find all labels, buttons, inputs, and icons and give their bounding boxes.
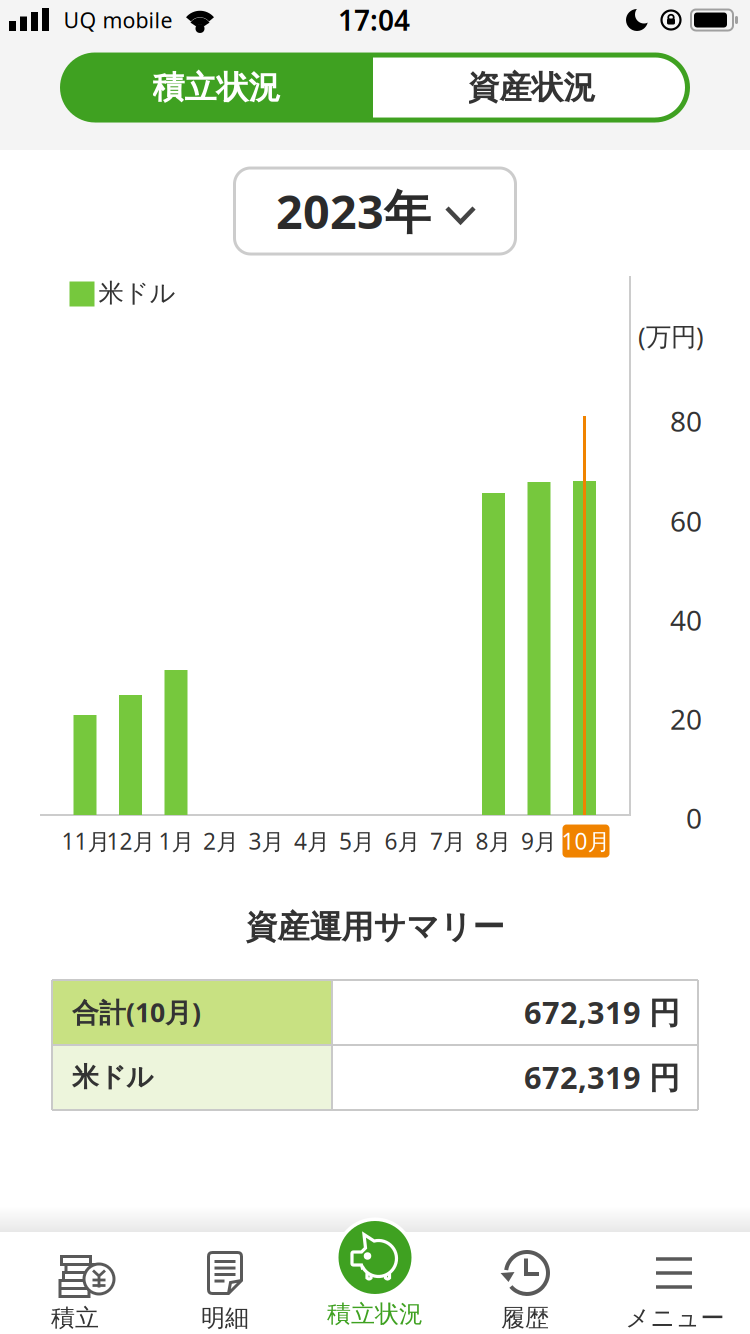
staticText: 3月 — [248, 826, 284, 856]
staticText: 6月 — [384, 826, 420, 856]
staticText: 672,319 円 — [524, 992, 680, 1032]
staticText: 17:04 — [338, 1, 410, 39]
staticText: 5月 — [339, 826, 375, 856]
button[interactable]: 資産状況 — [373, 52, 690, 122]
staticText: 0 — [686, 799, 702, 837]
staticText: 7月 — [430, 826, 466, 856]
button[interactable]: 明細 — [150, 1230, 300, 1334]
staticText: 資産状況 — [467, 68, 595, 107]
staticText: 11月 — [61, 826, 110, 856]
staticText: 12月 — [106, 826, 155, 856]
staticText: UQ mobile — [63, 6, 172, 34]
staticText: 40 — [670, 601, 702, 639]
button[interactable]: 履歴 — [450, 1230, 600, 1334]
staticText: 9月 — [521, 826, 557, 856]
button[interactable]: 積立 — [0, 1230, 150, 1334]
staticText: 履歴 — [501, 1303, 549, 1333]
staticText: 積立状況 — [327, 1299, 423, 1329]
staticText: 60 — [670, 502, 702, 540]
staticText: 10月 — [561, 826, 610, 856]
button[interactable]: メニュー — [600, 1230, 750, 1334]
staticText: 2023年 — [276, 180, 431, 242]
button[interactable]: 積立状況 — [60, 52, 373, 122]
staticText: 1月 — [158, 826, 194, 856]
staticText: 明細 — [201, 1303, 249, 1333]
staticText: 米ドル — [98, 277, 175, 308]
staticText: 積立状況 — [152, 68, 280, 107]
staticText: 合計(10月) — [72, 994, 201, 1030]
staticText: 672,319 円 — [524, 1057, 680, 1097]
staticText: メニュー — [625, 1303, 724, 1333]
staticText: 2月 — [203, 826, 239, 856]
staticText: 資産運用サマリー — [245, 907, 504, 947]
staticText: (万円) — [638, 319, 704, 353]
staticText: 8月 — [475, 826, 511, 856]
button[interactable]: 2023年 — [234, 168, 515, 254]
staticText: 20 — [670, 700, 702, 738]
staticText: 積立 — [51, 1303, 99, 1333]
staticText: 80 — [670, 402, 702, 440]
button[interactable]: 積立状況 — [300, 1214, 450, 1330]
staticText: 米ドル — [72, 1061, 153, 1093]
staticText: 4月 — [294, 826, 330, 856]
